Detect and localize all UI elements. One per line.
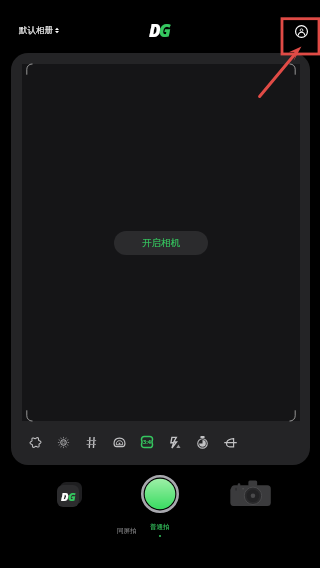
button[interactable]: Timer (191, 431, 213, 453)
button[interactable]: 默认相册 (19, 25, 59, 36)
button[interactable]: Filter (219, 431, 241, 453)
button[interactable]: Account (292, 22, 310, 40)
button[interactable]: Grid (80, 431, 102, 453)
button[interactable]: Beauty (52, 431, 74, 453)
button[interactable]: Camera (108, 431, 130, 453)
button[interactable]: Shutter (141, 475, 179, 513)
staticText: 同屏拍 (117, 527, 137, 535)
staticText: D (149, 19, 159, 42)
staticText: 3:4 (143, 438, 151, 446)
button[interactable]: Gallery (57, 485, 81, 509)
button[interactable]: 普通拍 (144, 523, 176, 543)
button[interactable]: 同屏拍 (110, 523, 144, 539)
staticText: G (159, 19, 171, 42)
button[interactable]: Effects (24, 431, 46, 453)
staticText: 开启相机 (142, 237, 180, 249)
staticText: 默认相册 (19, 25, 53, 36)
staticText: 普通拍 (150, 523, 170, 531)
button[interactable]: Aspect ratio (136, 431, 158, 453)
button[interactable]: Switch camera (229, 480, 273, 509)
button[interactable]: Flash (163, 431, 185, 453)
staticText: G (68, 489, 76, 504)
button[interactable]: 开启相机 (114, 231, 208, 255)
staticText: D (61, 489, 68, 504)
